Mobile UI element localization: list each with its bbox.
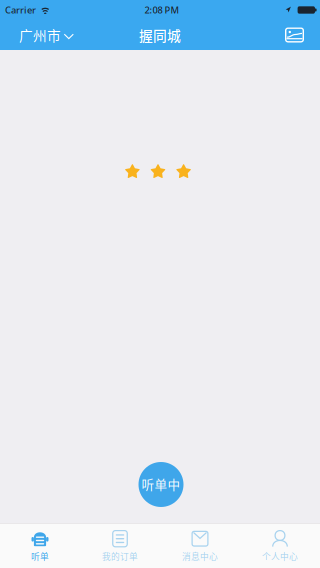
button[interactable]: 个人中心 [240, 524, 320, 568]
staticText: 消息中心 [182, 550, 218, 563]
staticText: 握同城 [139, 25, 181, 45]
button[interactable]: 广州市 [0, 20, 82, 50]
button[interactable]: 听单中 [138, 462, 183, 507]
staticText: 听单 [31, 550, 49, 563]
staticText: 广州市 [19, 25, 61, 45]
button[interactable]: Photos [284, 20, 320, 50]
button[interactable]: 我的订单 [80, 524, 160, 568]
button[interactable]: 听单 [0, 524, 80, 568]
button[interactable]: 消息中心 [160, 524, 240, 568]
staticText: 听单中 [141, 475, 180, 493]
staticText: Carrier [5, 4, 36, 16]
staticText: 个人中心 [262, 550, 298, 563]
staticText: 2:08 PM [144, 4, 179, 16]
staticText: 我的订单 [102, 550, 138, 563]
